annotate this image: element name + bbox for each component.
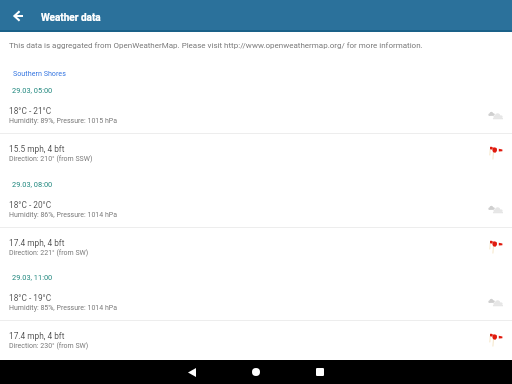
other: Wind bbox=[482, 232, 512, 258]
staticText: Southern Shores bbox=[13, 69, 66, 77]
button[interactable]: 18°C - 19°C bbox=[0, 287, 512, 313]
other: Wind bbox=[482, 325, 512, 351]
staticText: Direction: 210° (from SSW) bbox=[9, 155, 93, 163]
button[interactable]: 18°C - 20°C bbox=[0, 194, 512, 220]
staticText: Direction: 221° (from SW) bbox=[9, 249, 89, 257]
staticText: 18°C - 21°C bbox=[9, 106, 52, 116]
staticText: 18°C - 20°C bbox=[9, 200, 52, 210]
button[interactable]: 17.4 mph, 4 bft bbox=[0, 325, 512, 351]
button[interactable]: Back bbox=[0, 0, 36, 32]
other: Cloudy bbox=[482, 194, 512, 220]
staticText: 15.5 mph, 4 bft bbox=[9, 144, 65, 154]
staticText: 17.4 mph, 4 bft bbox=[9, 331, 65, 341]
button[interactable]: Southern Shores bbox=[13, 69, 66, 77]
button[interactable]: 17.4 mph, 4 bft bbox=[0, 232, 512, 258]
other: Cloudy bbox=[482, 100, 512, 126]
button[interactable]: Home bbox=[224, 360, 288, 384]
staticText: Humidity: 86%, Pressure: 1014 hPa bbox=[9, 211, 117, 219]
staticText: 17.4 mph, 4 bft bbox=[9, 238, 65, 248]
staticText: Weather data bbox=[41, 12, 101, 24]
staticText: Humidity: 89%, Pressure: 1015 hPa bbox=[9, 117, 117, 125]
staticText: 29.03, 05:00 bbox=[12, 86, 53, 95]
staticText: Humidity: 85%, Pressure: 1014 hPa bbox=[9, 304, 117, 312]
staticText: Direction: 230° (from SW) bbox=[9, 342, 89, 350]
other: Cloudy bbox=[482, 287, 512, 313]
button[interactable]: Back bbox=[160, 360, 224, 384]
button[interactable]: 18°C - 21°C bbox=[0, 100, 512, 126]
staticText: This data is aggregated from OpenWeather… bbox=[9, 41, 423, 50]
staticText: 29.03, 11:00 bbox=[12, 273, 53, 282]
staticText: 18°C - 19°C bbox=[9, 293, 52, 303]
staticText: 29.03, 08:00 bbox=[12, 180, 53, 189]
other: Wind bbox=[482, 138, 512, 164]
button[interactable]: Recent apps bbox=[288, 360, 352, 384]
button[interactable]: 15.5 mph, 4 bft bbox=[0, 138, 512, 164]
